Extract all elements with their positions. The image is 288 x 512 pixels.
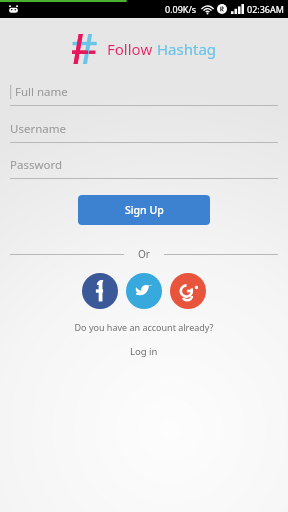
staticText: Or [138, 247, 150, 261]
staticText: Log in [130, 345, 158, 358]
button[interactable]: Log in [120, 343, 168, 360]
button[interactable]: Sign up with Twitter [126, 273, 162, 309]
staticText: Follow [107, 39, 153, 59]
button[interactable]: Password [0, 157, 288, 179]
staticText: 02:36AM [247, 3, 284, 15]
staticText: Full name [15, 84, 68, 100]
staticText: Sign Up [125, 203, 164, 217]
staticText: Hashtag [157, 39, 217, 59]
staticText: Password [10, 157, 63, 173]
staticText: 0.09K/s [165, 3, 197, 15]
staticText: Username [10, 121, 66, 137]
button[interactable]: Sign up with Facebook [82, 273, 118, 309]
staticText: Do you have an account already? [0, 321, 288, 333]
button[interactable]: Username [0, 121, 288, 143]
button[interactable]: Sign Up [78, 195, 210, 225]
button[interactable]: Full name [0, 84, 288, 106]
button[interactable]: Sign up with Google Plus [170, 273, 206, 309]
